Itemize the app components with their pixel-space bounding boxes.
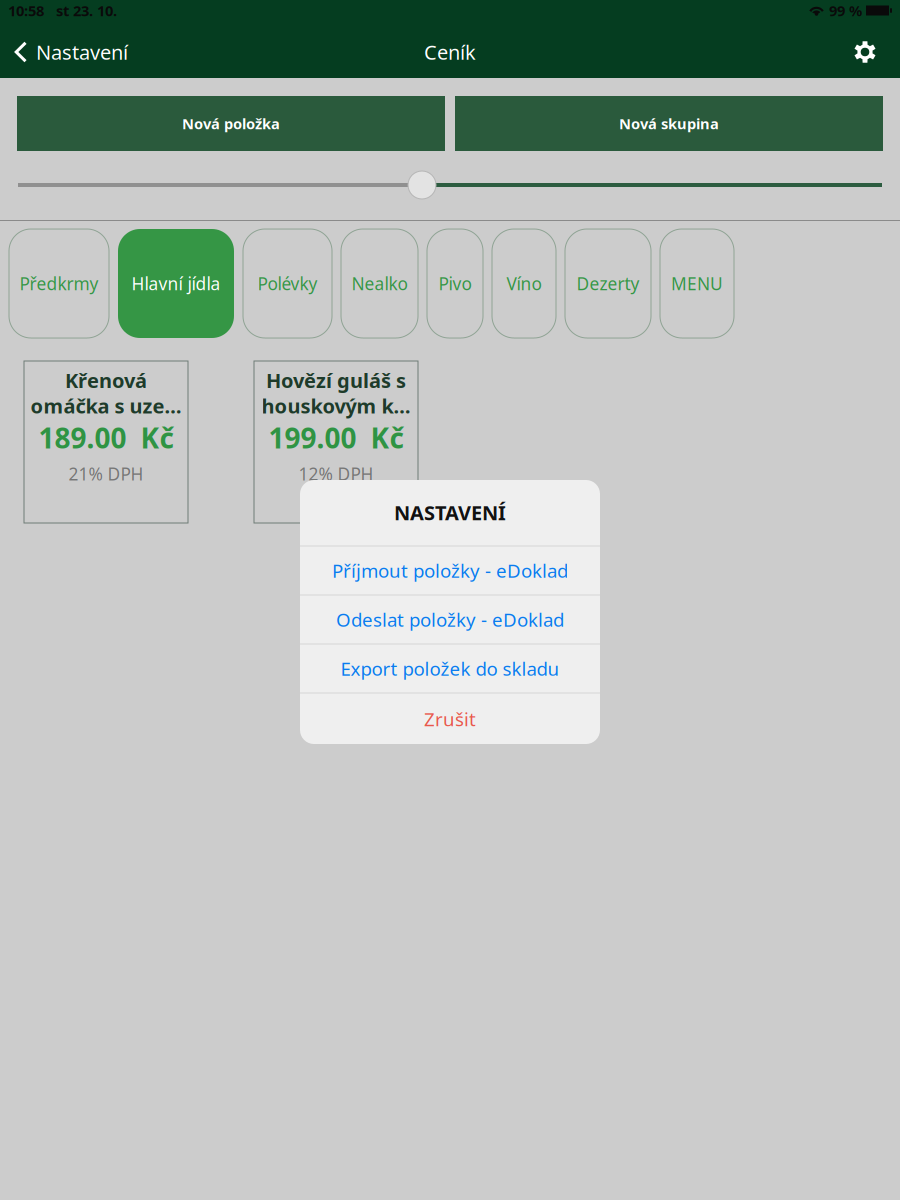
button[interactable]: Víno: [492, 229, 556, 338]
button[interactable]: Nastavení: [0, 26, 142, 78]
staticText: Dezerty: [576, 272, 639, 295]
staticText: Pivo: [438, 272, 471, 295]
staticText: Nová skupina: [619, 114, 719, 133]
staticText: Nová položka: [182, 114, 280, 133]
button[interactable]: Dezerty: [565, 229, 651, 338]
staticText: houskovým k…: [261, 393, 410, 419]
staticText: 99 %: [829, 1, 862, 20]
button[interactable]: Nealko: [341, 229, 418, 338]
button[interactable]: Pivo: [427, 229, 483, 338]
staticText: Víno: [506, 272, 541, 295]
staticText: Odeslat položky - eDoklad: [336, 607, 564, 632]
staticText: Polévky: [257, 272, 317, 295]
staticText: Příjmout položky - eDoklad: [332, 558, 568, 583]
button[interactable]: Příjmout položky - eDoklad: [300, 546, 600, 594]
staticText: Export položek do skladu: [340, 656, 559, 681]
staticText: st 23. 10.: [56, 1, 117, 20]
staticText: Nealko: [351, 272, 407, 295]
staticText: Křenová: [65, 367, 147, 394]
staticText: 189.00 Kč: [38, 419, 173, 456]
staticText: Ceník: [424, 39, 476, 65]
button[interactable]: Export položek do skladu: [300, 644, 600, 692]
button[interactable]: Hovězí guláš s: [254, 361, 418, 523]
button[interactable]: Nová skupina: [455, 96, 883, 151]
button[interactable]: Hlavní jídla: [118, 229, 234, 338]
staticText: Zrušit: [424, 707, 476, 731]
button[interactable]: Předkrmy: [9, 229, 109, 338]
staticText: 10:58: [8, 1, 44, 20]
button[interactable]: MENU: [660, 229, 734, 338]
button[interactable]: Polévky: [243, 229, 332, 338]
staticText: Hovězí guláš s: [266, 367, 406, 394]
button[interactable]: Křenová: [24, 361, 188, 523]
staticText: 21% DPH: [68, 462, 143, 485]
button[interactable]: Zrušit: [300, 693, 600, 744]
button[interactable]: Settings: [834, 26, 900, 78]
staticText: Hlavní jídla: [131, 272, 220, 295]
staticText: 199.00 Kč: [268, 419, 403, 456]
staticText: Nastavení: [36, 39, 128, 65]
button[interactable]: Odeslat položky - eDoklad: [300, 595, 600, 643]
staticText: Předkrmy: [19, 272, 98, 295]
button[interactable]: Nová položka: [17, 96, 445, 151]
staticText: 12% DPH: [298, 462, 373, 485]
staticText: omáčka s uze…: [30, 393, 181, 419]
staticText: MENU: [671, 272, 723, 295]
staticText: NASTAVENÍ: [394, 499, 506, 526]
